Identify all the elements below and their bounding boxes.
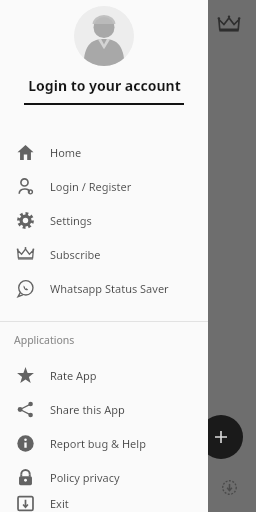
button[interactable]: Policy privacy [0, 460, 208, 494]
staticText: Home [50, 145, 82, 160]
button[interactable]: Report bug & Help [0, 426, 208, 460]
staticText: Login to your account [28, 76, 181, 95]
button[interactable]: Share this App [0, 392, 208, 426]
button[interactable]: Home [0, 135, 208, 169]
staticText: Subscribe [50, 247, 101, 262]
staticText: Rate App [50, 368, 97, 383]
button[interactable]: Exit [0, 494, 208, 512]
button[interactable]: Whatsapp Status Saver [0, 271, 208, 305]
button[interactable]: Premium [214, 10, 244, 40]
button[interactable]: Add [199, 415, 243, 459]
staticText: Policy privacy [50, 470, 120, 485]
button[interactable]: Download [218, 476, 240, 498]
button[interactable]: Login to your account [0, 76, 208, 95]
staticText: Exit [50, 496, 69, 511]
button[interactable]: Subscribe [0, 237, 208, 271]
button[interactable]: Login / Register [0, 169, 208, 203]
staticText: Login / Register [50, 179, 132, 194]
staticText: Settings [50, 213, 92, 228]
staticText: Share this App [50, 402, 125, 417]
staticText: Report bug & Help [50, 436, 146, 451]
button[interactable]: Rate App [0, 358, 208, 392]
staticText: Whatsapp Status Saver [50, 281, 169, 296]
staticText: Applications [14, 333, 75, 347]
button[interactable]: Profile picture [74, 6, 134, 66]
button[interactable]: Settings [0, 203, 208, 237]
